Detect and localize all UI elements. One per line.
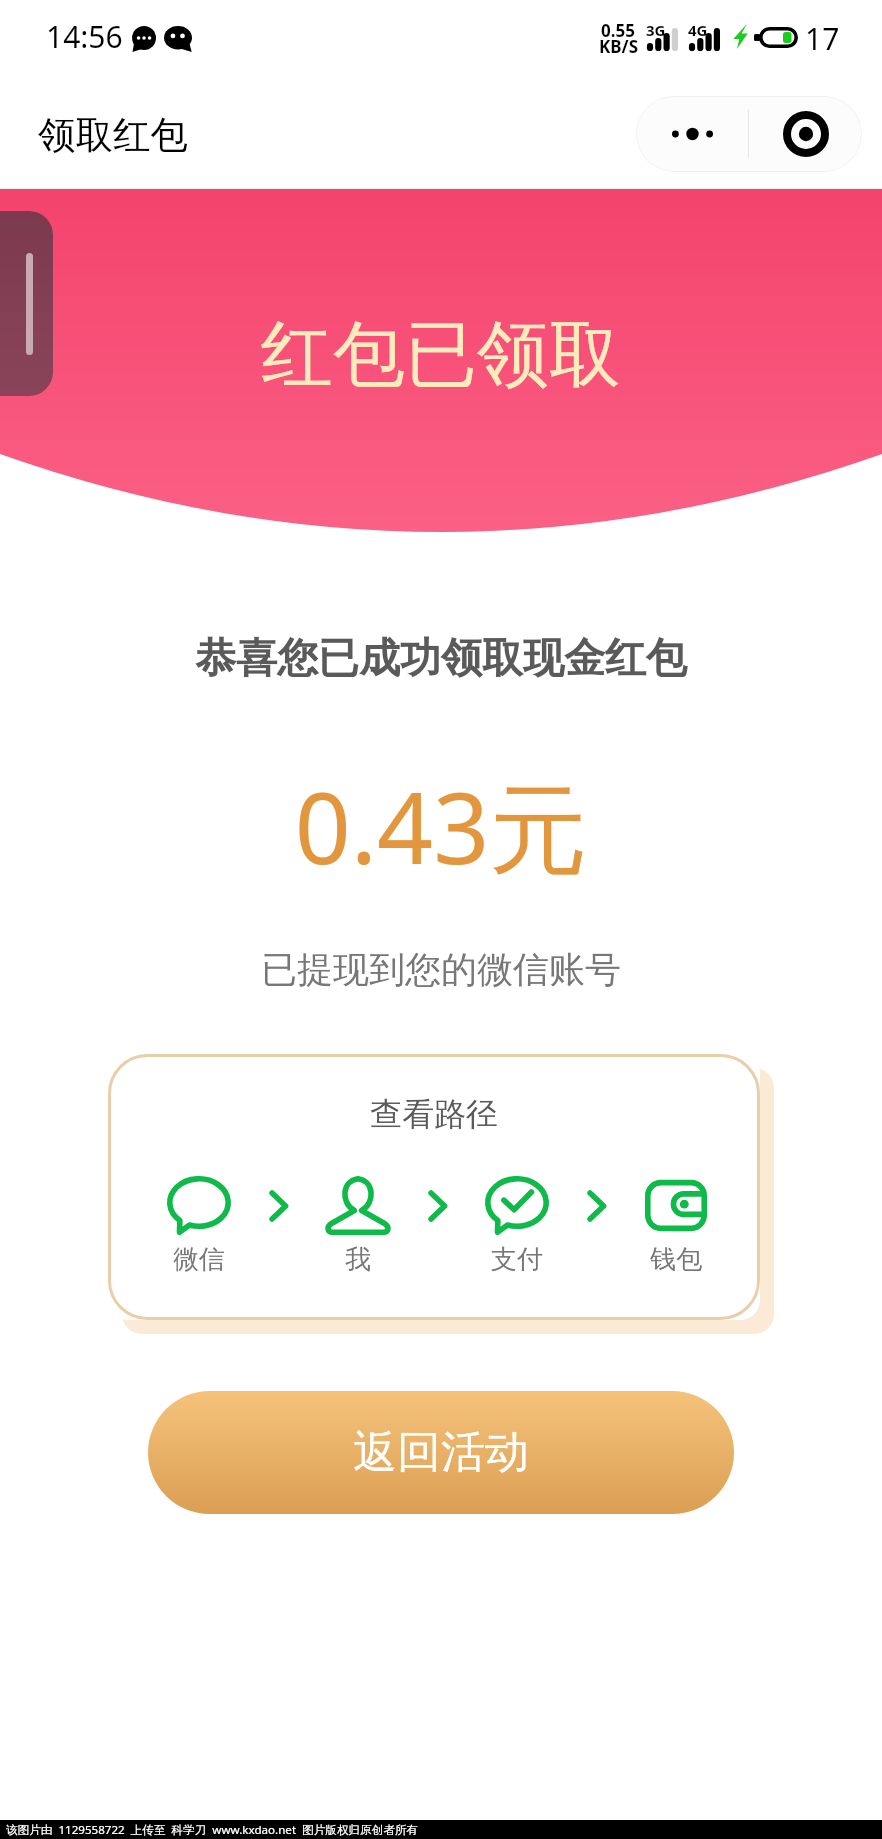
staticText: 14:56 [46, 16, 123, 57]
staticText: 查看路径 [370, 1094, 498, 1134]
button[interactable]: Open drawer [0, 211, 53, 396]
staticText: 0.55 [601, 19, 635, 42]
staticText: 支付 [491, 1243, 543, 1276]
staticText: 返回活动 [353, 1425, 529, 1480]
staticText: 红包已领取 [261, 310, 621, 401]
staticText: 3G [646, 20, 666, 40]
staticText: 恭喜您已成功领取现金红包 [0, 633, 882, 685]
staticText: 钱包 [650, 1243, 702, 1276]
staticText: 4G [688, 20, 708, 40]
button[interactable]: Close mini program [749, 96, 862, 172]
staticText: 领取红包 [38, 112, 188, 159]
staticText: 该图片由 1129558722 上传至 科学刀 www.kxdao.net 图片… [6, 1822, 419, 1838]
button[interactable]: More options [636, 96, 748, 172]
staticText: 已提现到您的微信账号 [0, 947, 882, 992]
button[interactable]: 返回活动 [148, 1391, 734, 1514]
staticText: KB/S [599, 35, 639, 58]
staticText: 我 [345, 1243, 371, 1276]
staticText: 0.43元 [0, 759, 882, 893]
staticText: 微信 [173, 1243, 225, 1276]
staticText: 17 [805, 18, 840, 59]
